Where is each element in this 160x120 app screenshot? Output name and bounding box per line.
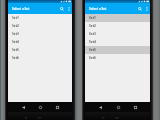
staticText: Set6 [89, 56, 96, 60]
staticText: Set3 [12, 32, 19, 36]
button[interactable]: Set6 [85, 54, 150, 62]
staticText: Set1 [12, 16, 19, 20]
button[interactable]: Set2 [85, 22, 150, 30]
staticText: Set6 [12, 56, 19, 60]
button[interactable]: Set3 [85, 30, 150, 38]
button[interactable]: Set5 [8, 46, 72, 54]
button[interactable]: Home [35, 102, 45, 112]
staticText: Set3 [89, 32, 96, 36]
button[interactable]: Set5 [85, 46, 150, 54]
button[interactable]: Home [113, 102, 123, 112]
staticText: Select a Set [12, 7, 30, 11]
button[interactable]: Search [136, 5, 143, 12]
button[interactable]: Back [18, 102, 28, 112]
button[interactable]: Set6 [8, 54, 72, 62]
button[interactable]: More options [65, 5, 72, 12]
button[interactable]: Recents [52, 102, 62, 112]
button[interactable]: Back [95, 102, 105, 112]
staticText: Select a Set [89, 7, 107, 11]
staticText: Set5 [12, 48, 19, 52]
button[interactable]: Set4 [8, 38, 72, 46]
staticText: Set5 [89, 48, 96, 52]
staticText: Set4 [12, 40, 19, 44]
button[interactable]: Set1 [85, 14, 150, 22]
staticText: Set2 [12, 24, 19, 28]
staticText: Set2 [89, 24, 96, 28]
staticText: Set1 [89, 16, 96, 20]
button[interactable]: Set1 [8, 14, 72, 22]
button[interactable]: Set3 [8, 30, 72, 38]
button[interactable]: Set4 [85, 38, 150, 46]
button[interactable]: More options [143, 5, 150, 12]
button[interactable]: Set2 [8, 22, 72, 30]
button[interactable]: Search [58, 5, 65, 12]
button[interactable]: Recents [130, 102, 140, 112]
staticText: Set4 [89, 40, 96, 44]
